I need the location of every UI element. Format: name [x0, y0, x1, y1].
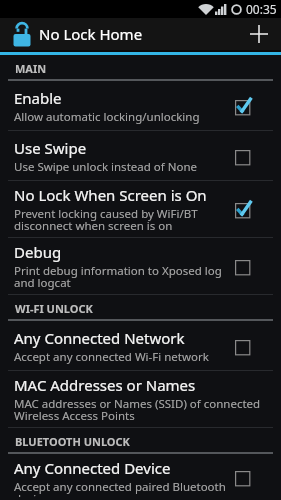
button[interactable]: Enable: [0, 81, 281, 130]
staticText: Allow automatic locking/unlocking: [14, 109, 200, 125]
button[interactable]: Use Swipe: [0, 131, 281, 180]
button[interactable]: Debug: [0, 238, 281, 294]
staticText: Use Swipe: [14, 138, 87, 158]
staticText: Any Connected Network: [14, 328, 185, 348]
staticText: Any Connected Device: [14, 458, 171, 478]
staticText: Debug: [14, 242, 62, 262]
staticText: MAC addresses or Names (SSID) of connect…: [14, 396, 261, 424]
button[interactable]: MAC Addresses or Names: [0, 371, 281, 427]
staticText: Use Swipe unlock instead of None: [14, 159, 197, 175]
button[interactable]: Any Connected Device: [0, 454, 281, 500]
staticText: Accept any connected paired Bluetooth de…: [14, 479, 226, 497]
staticText: Accept any connected Wi-Fi network: [14, 349, 209, 365]
staticText: BLUETOOTH UNLOCK: [15, 434, 130, 449]
staticText: Prevent locking caused by WiFi/BT discon…: [14, 206, 198, 234]
staticText: WI-FI UNLOCK: [15, 301, 93, 316]
staticText: Print debug information to Xposed log an…: [14, 263, 222, 291]
staticText: No Lock When Screen is On: [14, 185, 207, 205]
button[interactable]: No Lock When Screen is On: [0, 181, 281, 237]
staticText: 00:35: [246, 1, 277, 17]
button[interactable]: Any Connected Network: [0, 321, 281, 370]
staticText: Enable: [14, 88, 62, 108]
button[interactable]: [237, 18, 281, 50]
staticText: MAC Addresses or Names: [14, 375, 196, 395]
staticText: MAIN: [15, 61, 47, 76]
staticText: No Lock Home: [39, 24, 143, 44]
